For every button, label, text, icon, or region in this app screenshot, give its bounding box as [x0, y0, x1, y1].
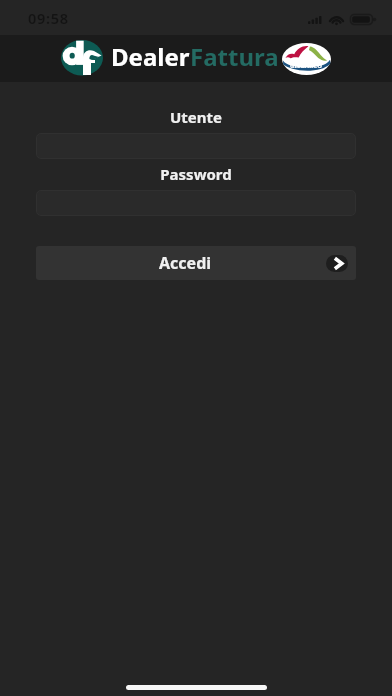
- staticText: GILBARCO: [290, 62, 323, 70]
- staticText: Fattura: [190, 40, 279, 73]
- staticText: Utente: [0, 107, 392, 127]
- staticText: Accedi: [159, 252, 212, 274]
- button[interactable]: Accedi: [36, 246, 356, 280]
- staticText: Password: [0, 164, 392, 184]
- other: Accedi: [326, 255, 348, 272]
- staticText: 09:58: [28, 8, 69, 28]
- staticText: Dealer: [111, 40, 190, 73]
